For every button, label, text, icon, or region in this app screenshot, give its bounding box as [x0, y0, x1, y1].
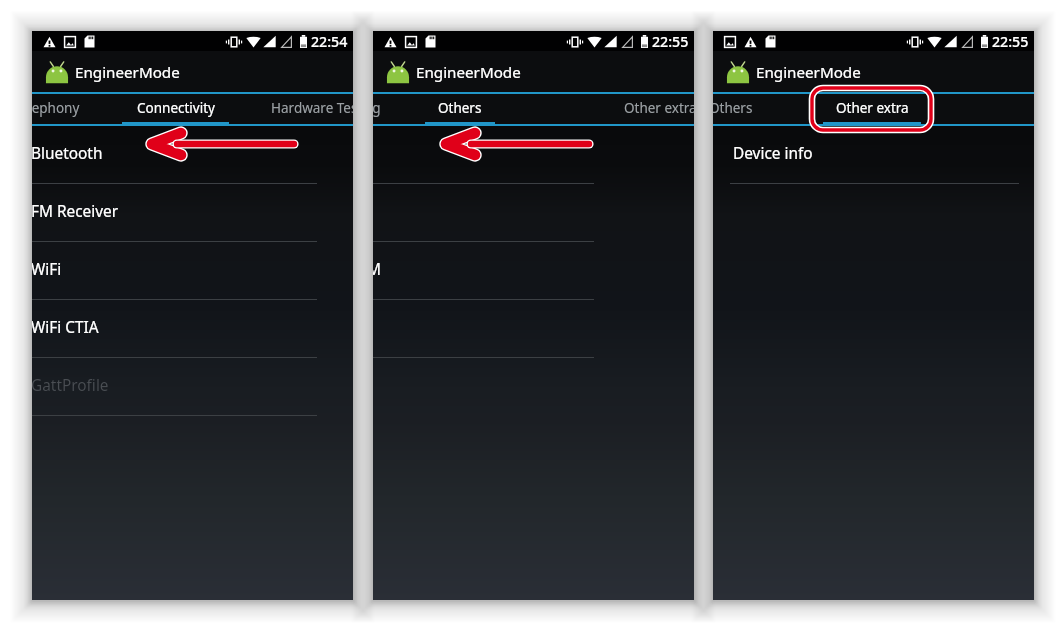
button[interactable]: NFC: [373, 300, 694, 358]
button[interactable]: Bluetooth: [32, 126, 353, 184]
staticText: Hardware Testing: [271, 99, 353, 117]
staticText: EngineerMode: [756, 62, 861, 83]
staticText: Bluetooth: [32, 143, 103, 164]
staticText: 22:55: [652, 32, 689, 51]
staticText: Other extra: [836, 99, 909, 117]
button[interactable]: Connectivity: [122, 92, 229, 126]
button[interactable]: WiFi CTIA: [32, 300, 353, 358]
button[interactable]: Others: [425, 92, 495, 126]
staticText: Testing: [373, 99, 381, 117]
button[interactable]: Device info: [713, 126, 1034, 184]
button[interactable]: Testing: [373, 92, 393, 126]
button[interactable]: Hardware Testing: [267, 92, 353, 126]
staticText: FM Receiver: [32, 201, 119, 222]
button[interactable]: FM Receiver: [32, 184, 353, 242]
staticText: M: [373, 259, 381, 280]
staticText: Telephony: [32, 99, 80, 117]
button[interactable]: Others: [713, 92, 766, 126]
staticText: WiFi: [32, 259, 62, 280]
staticText: Others: [713, 99, 753, 117]
button[interactable]: Other extra: [823, 92, 921, 126]
staticText: Connectivity: [137, 99, 215, 117]
staticText: 22:54: [311, 32, 348, 51]
button[interactable]: Other extra: [613, 92, 694, 126]
staticText: GattProfile: [32, 375, 109, 396]
button[interactable]: WiFi: [32, 242, 353, 300]
staticText: Others: [438, 99, 482, 117]
button[interactable]: USB: [373, 126, 694, 184]
button[interactable]: Telephony: [32, 92, 92, 126]
staticText: EngineerMode: [75, 62, 180, 83]
staticText: Other extra: [624, 99, 694, 117]
staticText: WiFi CTIA: [32, 317, 99, 338]
button[interactable]: Log: [373, 184, 694, 242]
button[interactable]: GattProfile: [32, 358, 353, 416]
staticText: 22:55: [992, 32, 1029, 51]
button[interactable]: M: [373, 242, 694, 300]
staticText: EngineerMode: [416, 62, 521, 83]
staticText: Device info: [733, 143, 813, 164]
